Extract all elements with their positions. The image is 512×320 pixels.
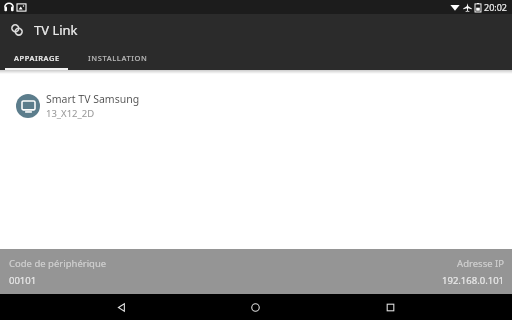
staticText: TV Link	[34, 21, 78, 39]
staticText: INSTALLATION	[88, 53, 148, 63]
button[interactable]: Recent apps	[377, 294, 403, 320]
staticText: APPAIRAGE	[14, 53, 60, 63]
button[interactable]: Home	[242, 294, 268, 320]
button[interactable]: Back	[108, 294, 134, 320]
staticText: 192.168.0.101	[442, 274, 504, 287]
staticText: Adresse IP	[457, 257, 504, 270]
button[interactable]: APPAIRAGE	[0, 46, 73, 70]
staticText: 13_X12_2D	[46, 107, 95, 120]
other: TV Link	[10, 23, 24, 37]
button[interactable]: INSTALLATION	[73, 46, 163, 70]
staticText: 00101	[9, 274, 37, 287]
staticText: 20:02	[484, 1, 508, 13]
button[interactable]: Smart TV Samsung	[0, 86, 512, 126]
staticText: Code de périphérique	[9, 257, 107, 270]
staticText: Smart TV Samsung	[46, 92, 140, 106]
